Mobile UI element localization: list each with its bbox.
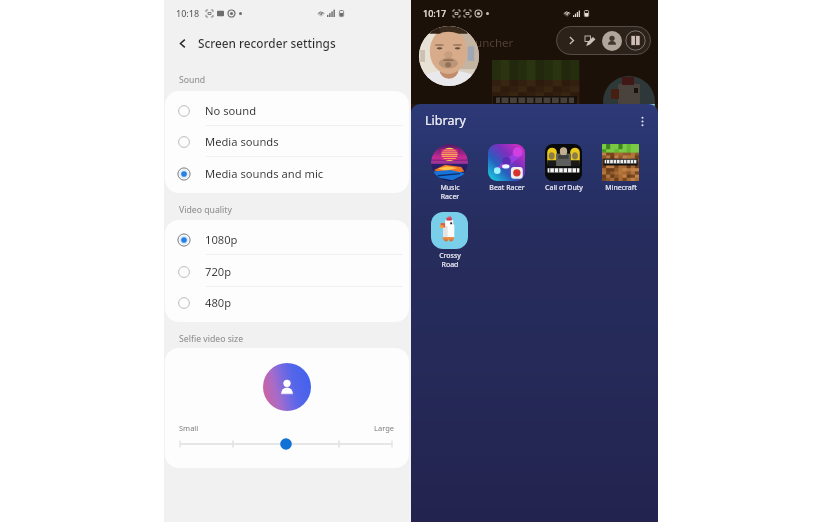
staticText: Music Racer xyxy=(440,183,460,201)
staticText: Call of Duty xyxy=(545,183,583,193)
staticText: 10:18 xyxy=(176,7,200,19)
button[interactable]: Media sounds and mic xyxy=(165,158,409,189)
staticText: uncher xyxy=(475,35,514,51)
button[interactable]: Minecraft xyxy=(592,144,649,193)
staticText: Selfie video size xyxy=(179,333,244,345)
button[interactable]: 1080p xyxy=(165,224,409,255)
staticText: Sound xyxy=(179,74,206,86)
staticText: 720p xyxy=(205,264,232,279)
staticText: Video quality xyxy=(179,204,232,216)
staticText: 10:17 xyxy=(423,7,447,19)
button[interactable]: Player profile xyxy=(419,26,479,86)
button[interactable]: 480p xyxy=(165,287,409,318)
staticText: Library xyxy=(425,112,466,129)
staticText: Large xyxy=(374,423,395,433)
staticText: Media sounds and mic xyxy=(205,166,324,181)
button[interactable]: Crossy Road xyxy=(421,212,478,269)
button[interactable]: No sound xyxy=(165,95,409,126)
other: Navigate up xyxy=(176,37,189,50)
staticText: Media sounds xyxy=(205,134,279,149)
button[interactable]: Beat Racer xyxy=(478,144,535,193)
button[interactable]: More options xyxy=(633,112,651,130)
button[interactable]: Music Racer xyxy=(421,144,478,201)
staticText: No sound xyxy=(205,103,257,118)
staticText: 480p xyxy=(205,295,232,310)
button[interactable]: 720p xyxy=(165,256,409,287)
button[interactable]: Profile xyxy=(602,31,622,51)
staticText: Screen recorder settings xyxy=(198,35,336,51)
button[interactable]: Library xyxy=(625,30,646,51)
staticText: Minecraft xyxy=(605,183,637,193)
button[interactable]: Navigate up xyxy=(164,30,411,56)
staticText: Crossy Road xyxy=(439,251,461,269)
button[interactable]: Edit profile xyxy=(583,34,597,48)
staticText: Small xyxy=(179,423,199,433)
button[interactable]: Expand xyxy=(565,34,578,47)
button[interactable]: Selfie video size slider xyxy=(175,436,397,452)
button[interactable]: Call of Duty xyxy=(535,144,592,193)
staticText: 1080p xyxy=(205,232,238,247)
staticText: Beat Racer xyxy=(489,183,525,193)
button[interactable]: Media sounds xyxy=(165,126,409,157)
